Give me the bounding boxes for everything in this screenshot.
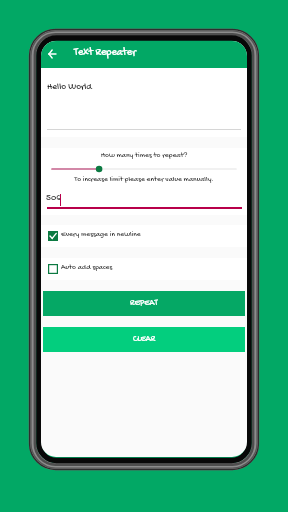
button[interactable]: CLEAR (43, 327, 245, 352)
button[interactable]: REPEAT (43, 291, 245, 316)
button[interactable]: Repeat count (49, 162, 239, 176)
staticText: CLEAR (133, 335, 156, 345)
staticText: How many times to repeat? (41, 151, 247, 160)
staticText: Auto add spaces (61, 263, 113, 272)
staticText: 506 (46, 193, 61, 204)
staticText: To increase limit please enter value man… (41, 175, 247, 184)
button[interactable]: Back (42, 44, 62, 64)
button[interactable]: Every message in newline (41, 225, 247, 247)
staticText: REPEAT (130, 299, 158, 309)
staticText: Every message in newline (61, 230, 141, 239)
button[interactable]: Auto add spaces (41, 258, 247, 280)
staticText: Text Repeater (74, 47, 136, 59)
staticText: Hello World (47, 82, 92, 93)
